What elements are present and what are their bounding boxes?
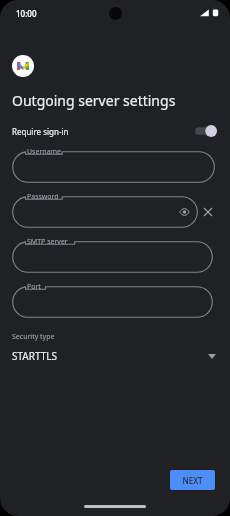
staticText: 10:00 — [16, 8, 37, 19]
staticText: Password — [27, 192, 59, 202]
staticText: Security type — [12, 332, 55, 342]
button[interactable]: Clear password — [200, 204, 216, 220]
button[interactable]: Port — [12, 286, 213, 318]
staticText: NEXT — [182, 475, 203, 486]
button[interactable]: Password — [12, 196, 198, 228]
staticText: SMTP server — [27, 237, 68, 247]
staticText: Require sign-in — [12, 126, 69, 137]
button[interactable]: SMTP server — [12, 241, 213, 273]
staticText: Username — [27, 147, 62, 157]
button[interactable]: NEXT — [170, 470, 215, 490]
button[interactable]: Require sign-in — [0, 122, 230, 140]
button[interactable]: Username — [12, 151, 215, 183]
staticText: Port — [27, 282, 41, 292]
button[interactable]: Security type — [0, 332, 230, 363]
staticText: STARTTLS — [12, 349, 58, 363]
staticText: Outgoing server settings — [12, 91, 176, 110]
button[interactable]: Show password — [177, 205, 191, 219]
